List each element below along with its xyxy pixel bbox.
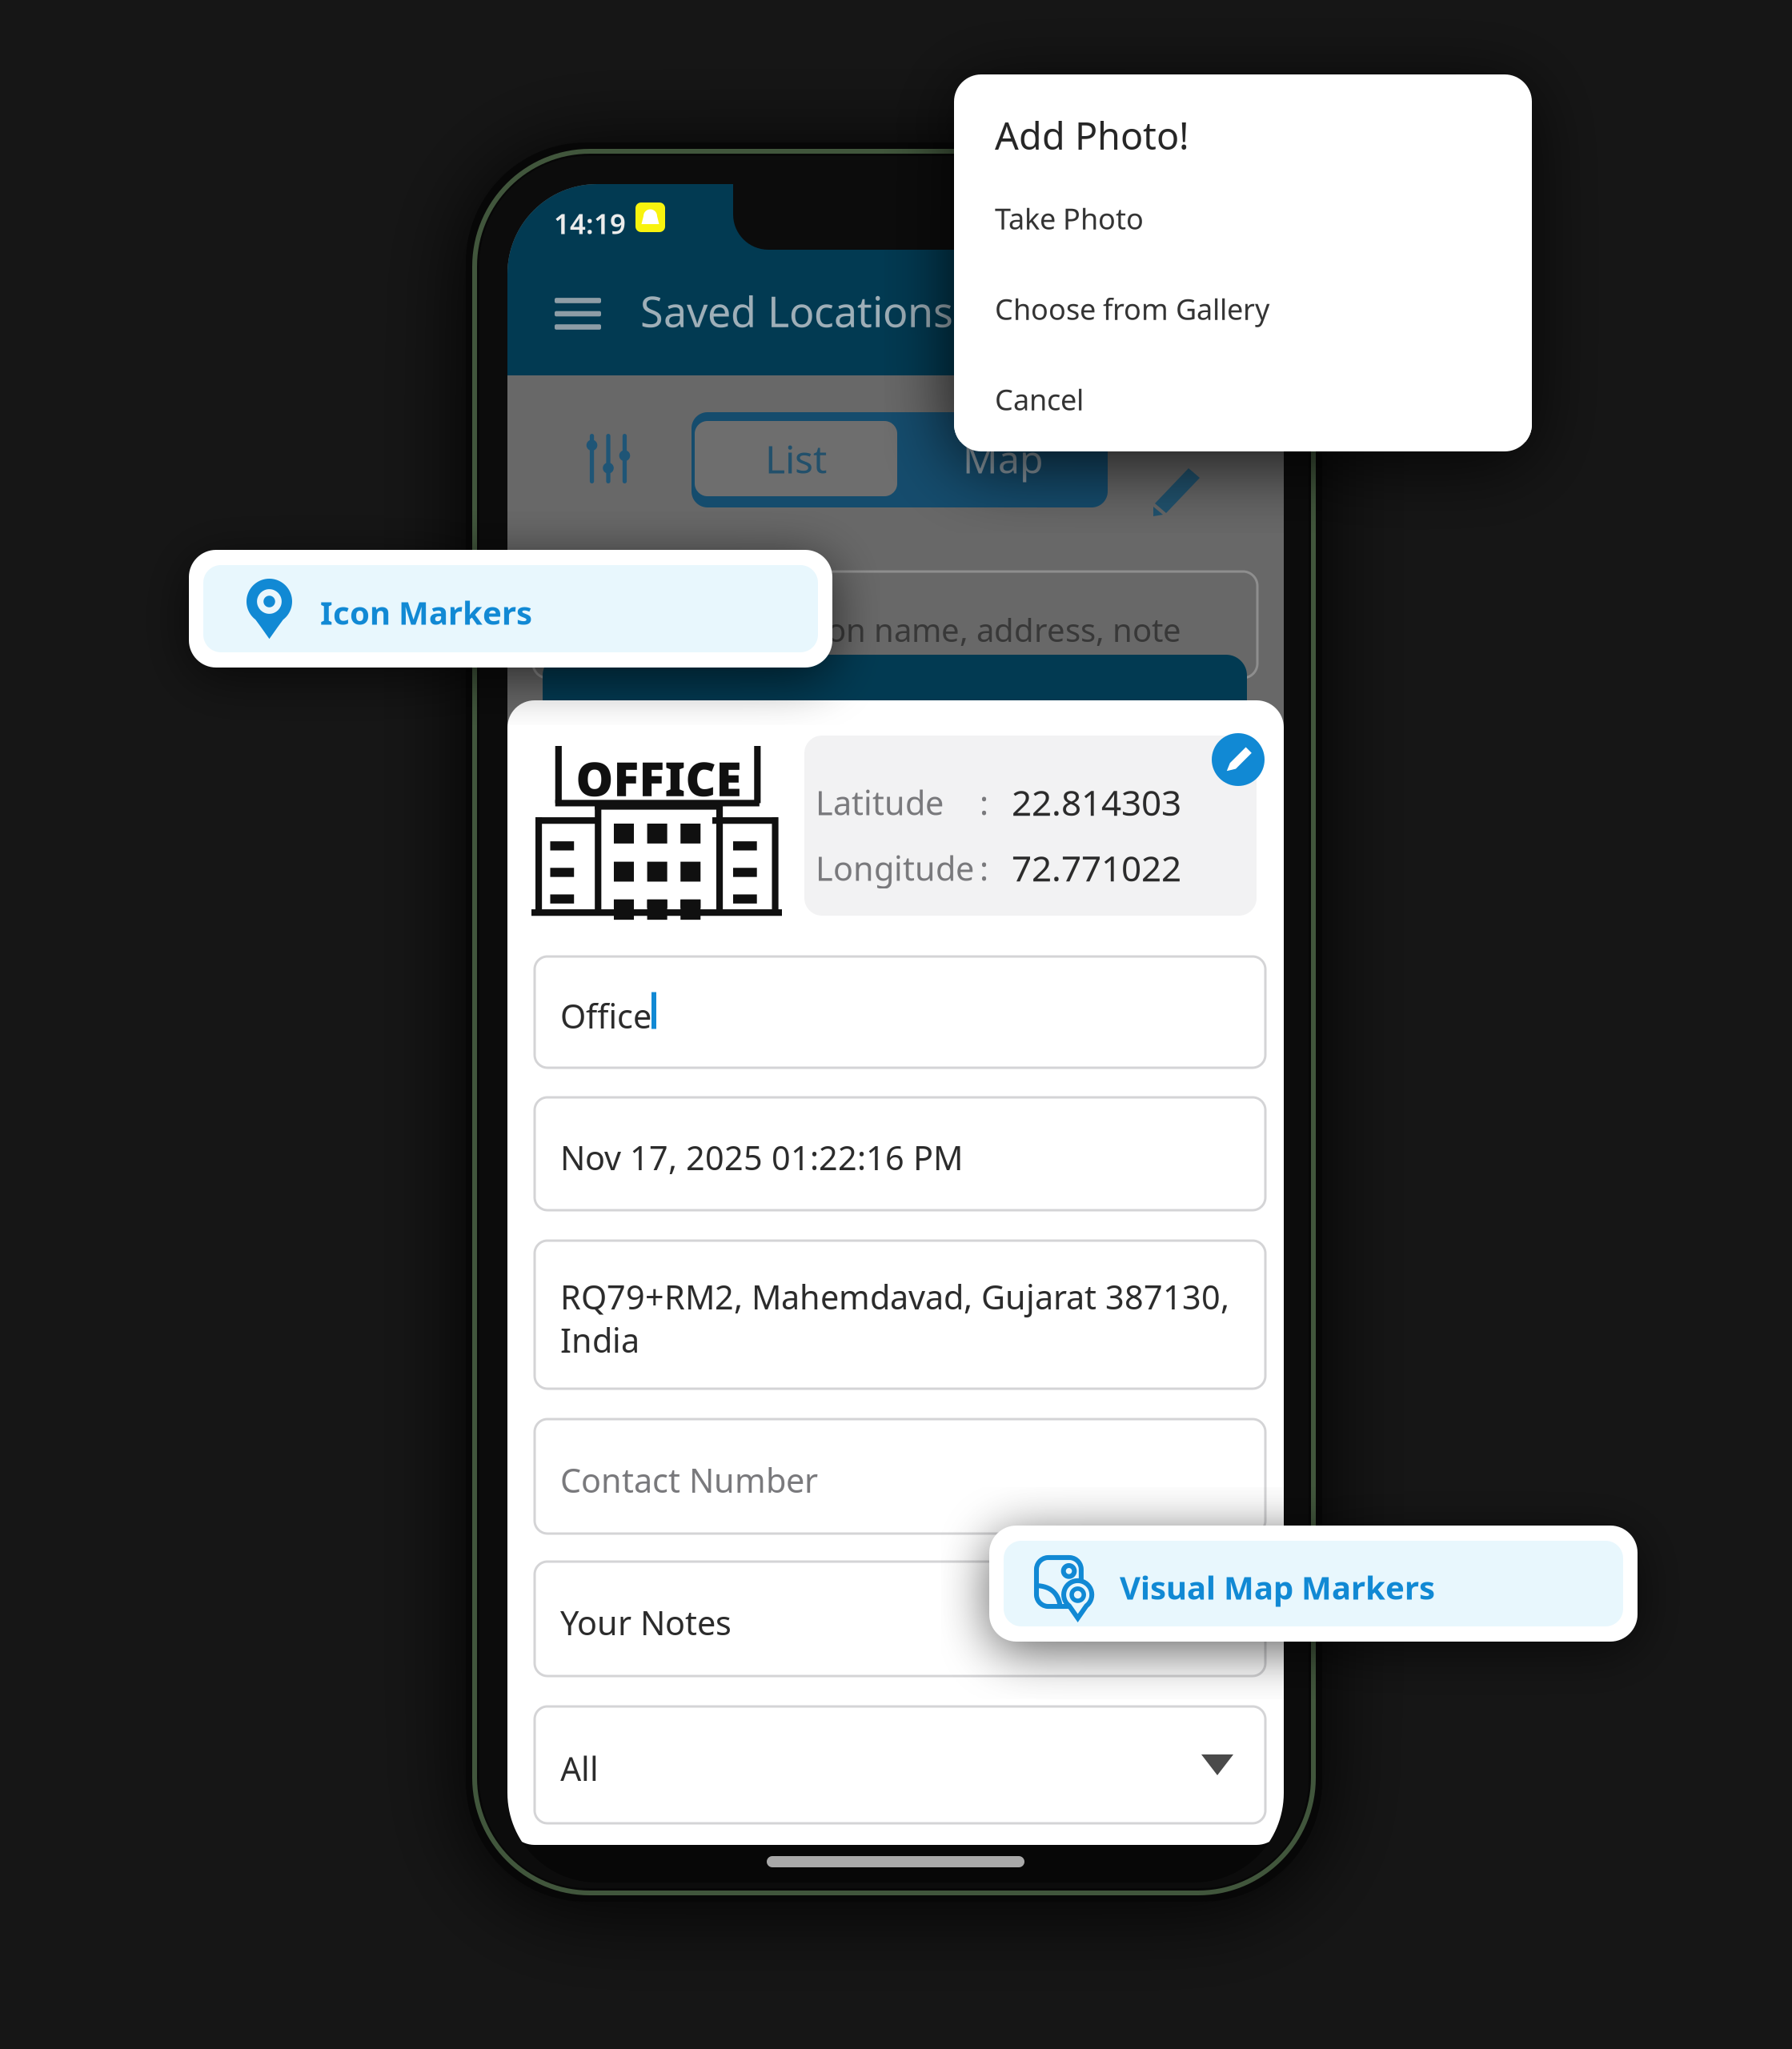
staticText: Take Photo bbox=[995, 199, 1144, 238]
button[interactable]: Edit bbox=[1212, 733, 1265, 786]
button[interactable]: All bbox=[535, 1706, 1265, 1823]
button[interactable]: Cancel bbox=[954, 359, 1532, 442]
staticText: All bbox=[560, 1746, 599, 1790]
button[interactable]: Choose from Gallery bbox=[954, 268, 1532, 351]
staticText: 14:19 bbox=[554, 205, 626, 242]
button[interactable]: Map bbox=[902, 421, 1104, 496]
staticText: Office bbox=[560, 994, 651, 1038]
staticText: 72.771022 bbox=[1012, 844, 1181, 891]
staticText: Icon Markers bbox=[320, 591, 532, 634]
button[interactable]: RQ79+RM2, Mahemdavad, Gujarat 387130, bbox=[535, 1241, 1265, 1389]
staticText: Saved Locations bbox=[640, 283, 953, 339]
button[interactable]: Icon Markers bbox=[189, 550, 832, 668]
staticText: 22.814303 bbox=[1012, 779, 1181, 826]
button[interactable]: Contact Number bbox=[535, 1419, 1265, 1534]
button[interactable]: List bbox=[695, 421, 897, 496]
staticText: Contact Number bbox=[560, 1458, 818, 1502]
button[interactable]: Office bbox=[535, 956, 1265, 1068]
staticText: Search for a location name, address, not… bbox=[560, 608, 1181, 651]
button[interactable]: Your Notes bbox=[535, 1562, 1265, 1676]
staticText: Latitude bbox=[816, 780, 944, 824]
button[interactable]: Menu bbox=[538, 280, 618, 347]
button[interactable]: Nov 17, 2025 01:22:16 PM bbox=[535, 1097, 1265, 1210]
staticText: List bbox=[765, 433, 827, 484]
staticText: India bbox=[560, 1318, 639, 1362]
staticText: Your Notes bbox=[560, 1600, 732, 1644]
staticText: RQ79+RM2, Mahemdavad, Gujarat 387130, bbox=[560, 1275, 1229, 1319]
staticText: : bbox=[980, 846, 988, 890]
button[interactable]: Edit list bbox=[1153, 468, 1207, 518]
button[interactable]: Filters bbox=[571, 422, 645, 495]
staticText: Map bbox=[963, 433, 1044, 484]
staticText: : bbox=[980, 780, 988, 824]
staticText: OFFICE bbox=[576, 747, 741, 809]
staticText: Visual Map Markers bbox=[1120, 1566, 1435, 1608]
staticText: Longitude bbox=[816, 846, 974, 890]
button[interactable]: Visual Map Markers bbox=[989, 1526, 1638, 1642]
staticText: Add Photo! bbox=[995, 110, 1189, 160]
button[interactable]: Take Photo bbox=[954, 178, 1532, 261]
staticText: Choose from Gallery bbox=[995, 290, 1269, 328]
staticText: Nov 17, 2025 01:22:16 PM bbox=[560, 1135, 963, 1179]
staticText: Cancel bbox=[995, 380, 1084, 418]
